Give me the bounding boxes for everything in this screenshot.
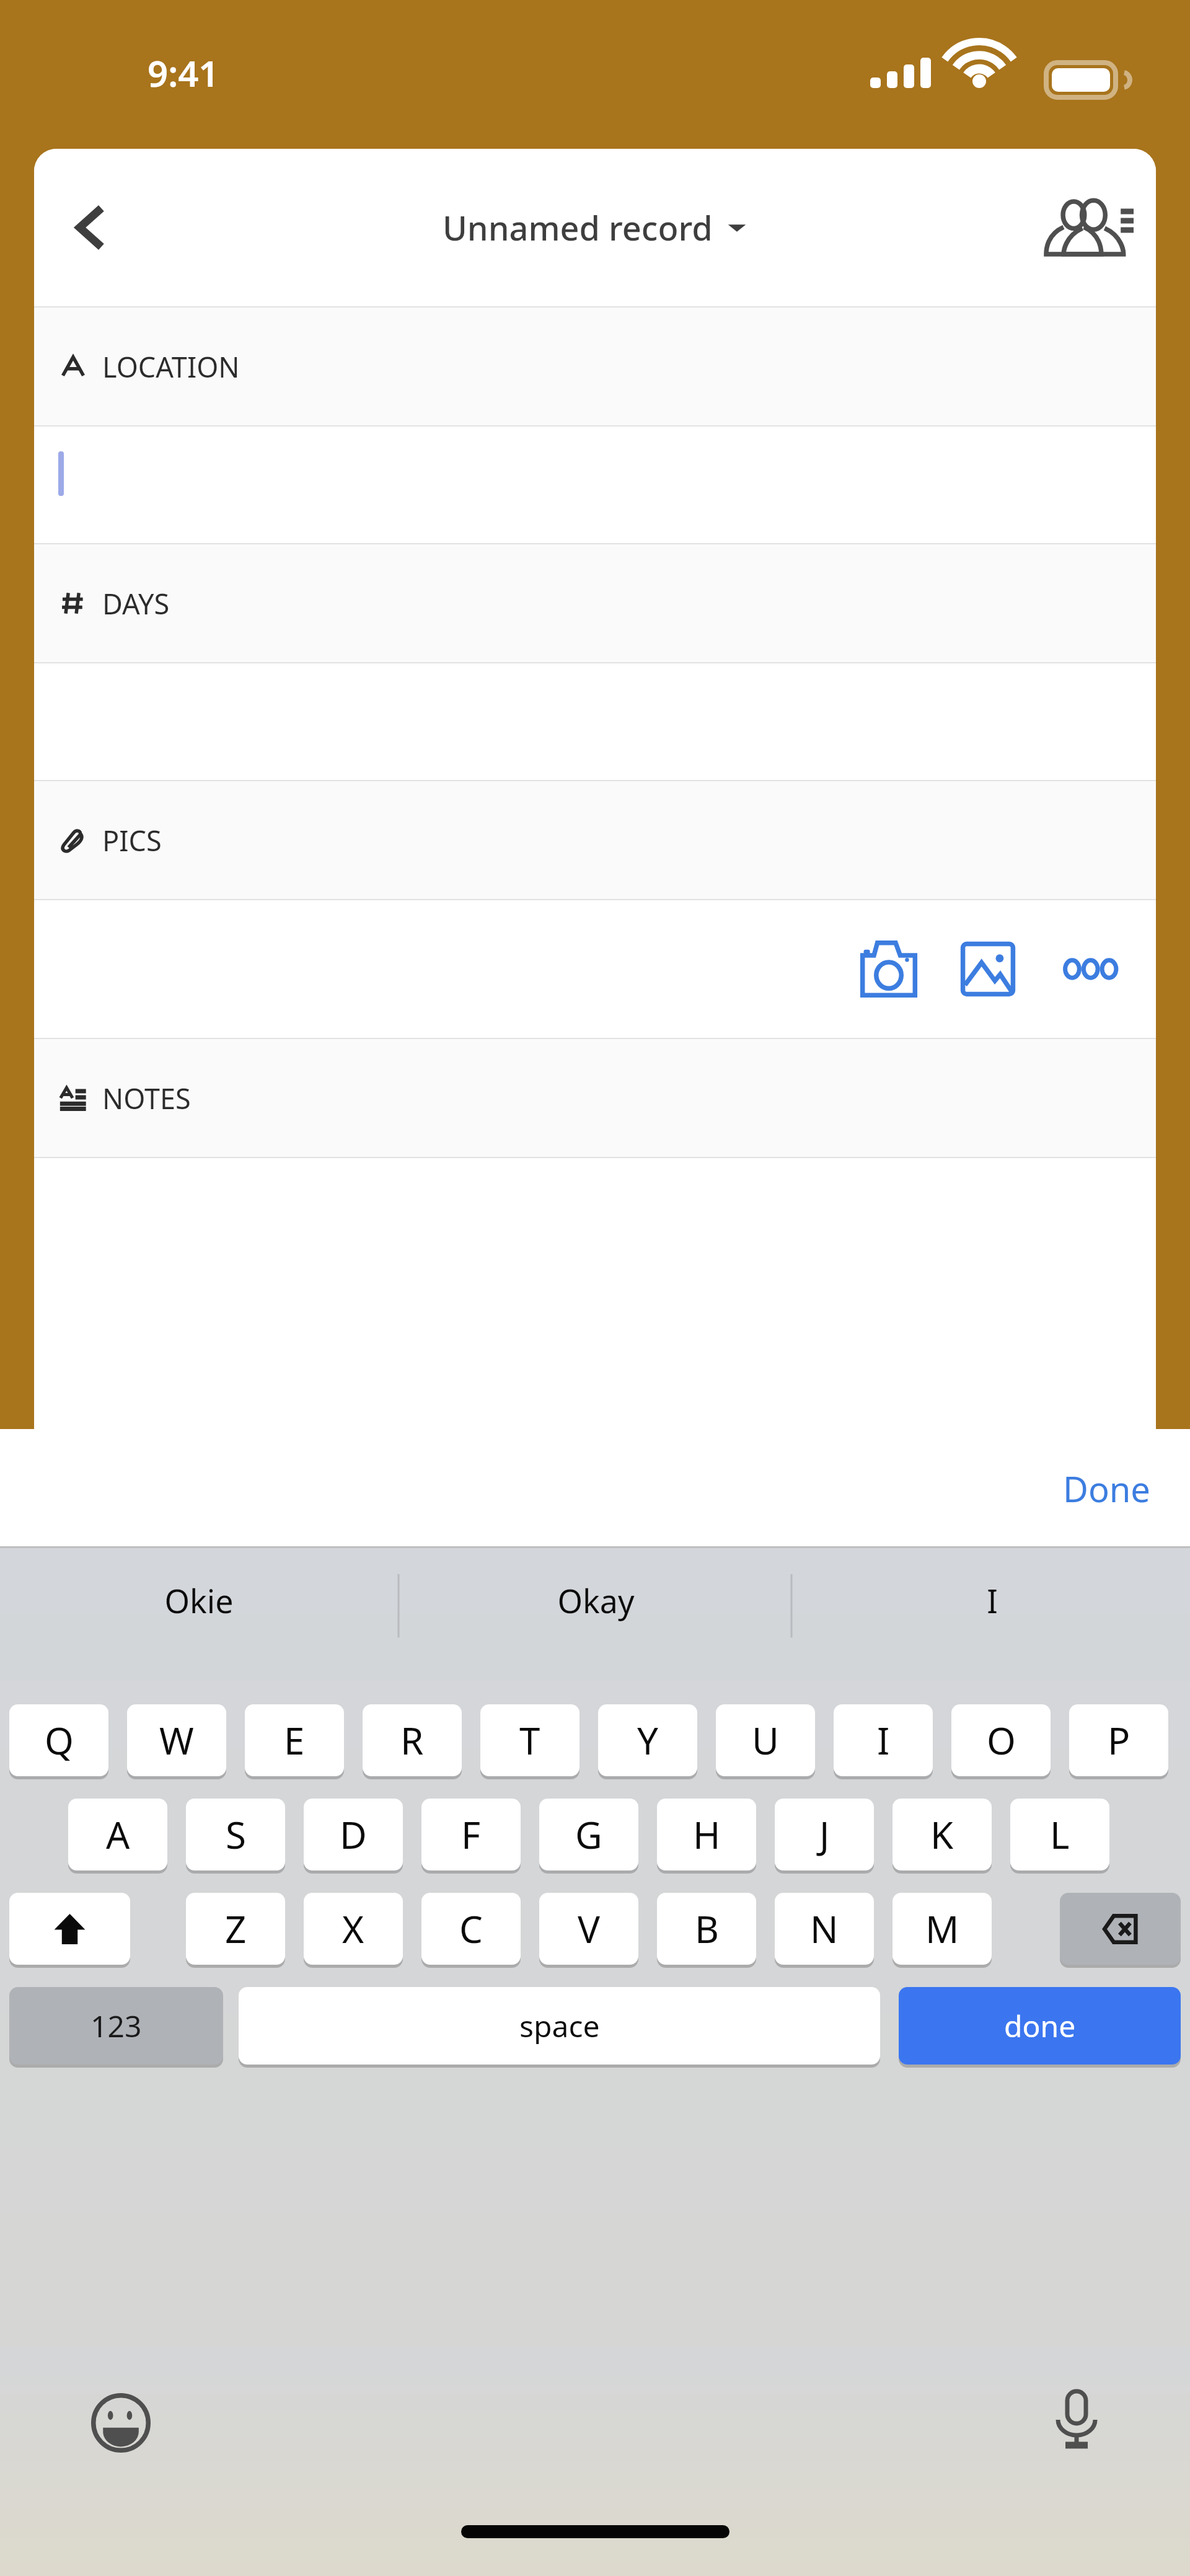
staticText: Done	[1063, 1465, 1150, 1512]
staticText: O	[987, 1715, 1016, 1766]
button[interactable]: N	[775, 1893, 874, 1965]
staticText: I	[877, 1715, 890, 1766]
staticText: W	[159, 1715, 194, 1766]
button[interactable]: Shift	[9, 1893, 130, 1965]
button[interactable]: More options	[1052, 929, 1132, 1009]
staticText: Okay	[557, 1578, 635, 1622]
staticText: C	[459, 1903, 483, 1954]
staticText: Y	[637, 1715, 658, 1766]
button[interactable]: G	[539, 1799, 638, 1870]
staticText: H	[693, 1809, 721, 1860]
button[interactable]: U	[716, 1704, 815, 1776]
staticText: Q	[45, 1715, 74, 1766]
button[interactable]: I	[806, 1548, 1178, 1652]
staticText: N	[810, 1903, 839, 1954]
staticText: NOTES	[102, 1079, 191, 1117]
button[interactable]: Take photo	[848, 929, 929, 1009]
button[interactable]: Z	[186, 1893, 285, 1965]
button[interactable]: LOCATION	[34, 308, 1156, 425]
staticText: U	[752, 1715, 779, 1766]
button[interactable]: Done	[1054, 1456, 1159, 1521]
button[interactable]: Okie	[13, 1548, 385, 1652]
staticText: F	[461, 1809, 481, 1860]
button[interactable]: Delete	[1060, 1893, 1181, 1965]
staticText: D	[340, 1809, 367, 1860]
button[interactable]: Emoji	[81, 2383, 161, 2463]
button[interactable]: L	[1010, 1799, 1109, 1870]
button[interactable]: E	[245, 1704, 344, 1776]
staticText: B	[695, 1903, 719, 1954]
button[interactable]: NOTES	[34, 1039, 1156, 1157]
button[interactable]: J	[775, 1799, 874, 1870]
button[interactable]: Q	[9, 1704, 108, 1776]
button[interactable]: K	[892, 1799, 992, 1870]
staticText: done	[1004, 2006, 1076, 2046]
button[interactable]: Choose image	[948, 929, 1028, 1009]
button[interactable]: done	[899, 1987, 1181, 2065]
button[interactable]: W	[127, 1704, 226, 1776]
button[interactable]: H	[657, 1799, 756, 1870]
button[interactable]: P	[1069, 1704, 1168, 1776]
staticText: space	[519, 2006, 600, 2046]
button[interactable]: DAYS	[34, 544, 1156, 662]
button[interactable]: Y	[598, 1704, 697, 1776]
button[interactable]: F	[421, 1799, 521, 1870]
button[interactable]: Okay	[410, 1548, 782, 1652]
button[interactable]: B	[657, 1893, 756, 1965]
staticText: P	[1108, 1715, 1130, 1766]
staticText: A	[106, 1809, 130, 1860]
staticText: X	[342, 1903, 364, 1954]
staticText: K	[930, 1809, 954, 1860]
staticText: Z	[225, 1903, 247, 1954]
button[interactable]: M	[892, 1893, 992, 1965]
staticText: I	[987, 1578, 998, 1622]
button[interactable]: Contacts	[1053, 187, 1134, 268]
button[interactable]	[34, 663, 1156, 780]
button[interactable]: A	[68, 1799, 167, 1870]
staticText: DAYS	[102, 585, 170, 622]
button[interactable]: Unnamed record	[443, 205, 747, 250]
staticText: V	[578, 1903, 600, 1954]
button[interactable]: S	[186, 1799, 285, 1870]
staticText: G	[575, 1809, 602, 1860]
button[interactable]: R	[363, 1704, 462, 1776]
staticText: LOCATION	[102, 348, 240, 386]
button[interactable]: O	[951, 1704, 1051, 1776]
button[interactable]	[34, 427, 1156, 543]
button[interactable]: PICS	[34, 781, 1156, 899]
staticText: S	[226, 1809, 246, 1860]
staticText: L	[1050, 1809, 1070, 1860]
staticText: R	[400, 1715, 424, 1766]
staticText: E	[284, 1715, 305, 1766]
staticText: 123	[90, 2006, 142, 2046]
button[interactable]: Dictate	[1036, 2379, 1117, 2459]
staticText: J	[819, 1809, 830, 1860]
button[interactable]: I	[834, 1704, 933, 1776]
staticText: PICS	[102, 821, 162, 859]
staticText: Unnamed record	[443, 205, 713, 250]
staticText: M	[925, 1903, 959, 1954]
button[interactable]: C	[421, 1893, 521, 1965]
button[interactable]: 123	[9, 1987, 223, 2065]
staticText: Okie	[164, 1578, 234, 1622]
button[interactable]: D	[304, 1799, 403, 1870]
button[interactable]: space	[239, 1987, 880, 2065]
button[interactable]: T	[480, 1704, 580, 1776]
staticText: T	[519, 1715, 540, 1766]
button[interactable]: V	[539, 1893, 638, 1965]
staticText: 9:41	[148, 48, 219, 97]
button[interactable]: X	[304, 1893, 403, 1965]
button[interactable]: Back	[55, 190, 130, 265]
